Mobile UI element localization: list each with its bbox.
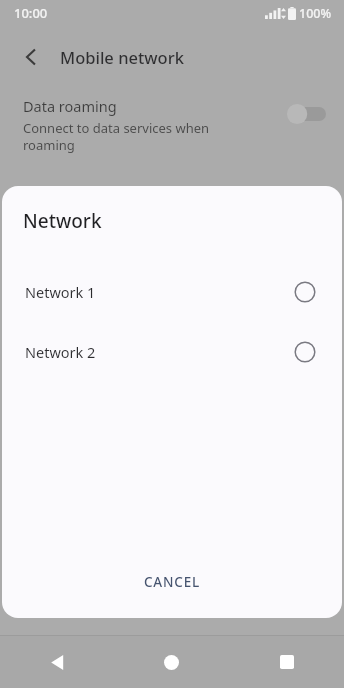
staticText: 10:00 [14, 4, 48, 22]
staticText: Mobile network [60, 46, 184, 68]
staticText: Network [23, 208, 102, 234]
staticText: Network 2 [25, 342, 294, 362]
button[interactable]: CANCEL [130, 565, 214, 599]
staticText: CANCEL [144, 573, 200, 591]
button[interactable]: Recent apps [229, 636, 344, 688]
button[interactable]: Data roaming [0, 88, 344, 164]
staticText: Connect to data services when roaming [23, 119, 210, 154]
staticText: Data roaming [23, 96, 117, 116]
button[interactable]: Data roaming toggle [286, 103, 326, 125]
button[interactable]: Back [10, 36, 52, 78]
button[interactable]: Home [114, 636, 229, 688]
button[interactable]: Network 2 [2, 322, 342, 382]
button[interactable]: Back [0, 636, 114, 688]
staticText: Network 1 [25, 282, 294, 302]
button[interactable]: Network 1 [2, 262, 342, 322]
staticText: 100% [299, 5, 332, 22]
